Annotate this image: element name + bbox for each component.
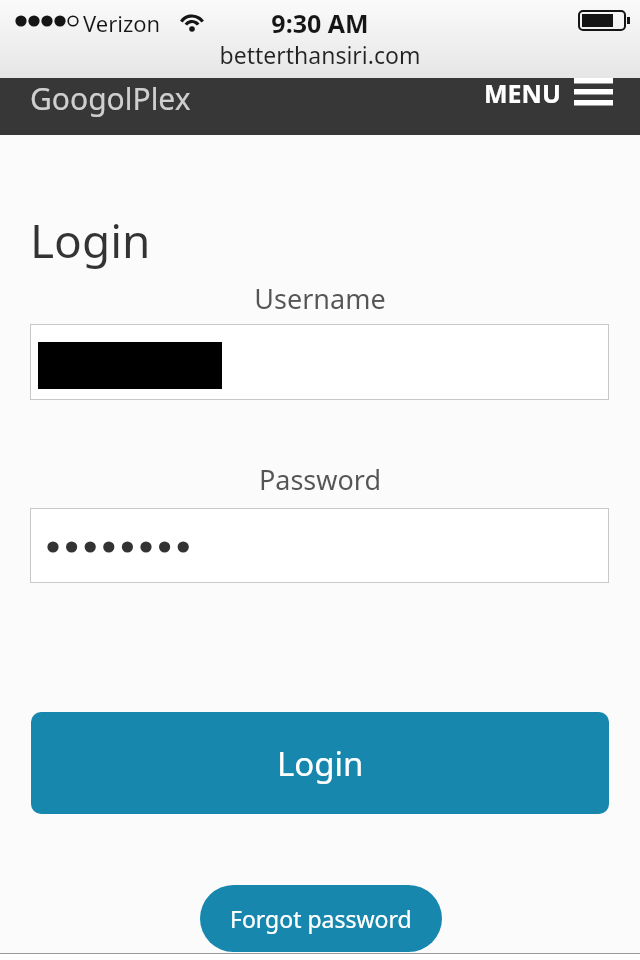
staticText: GoogolPlex <box>30 78 191 119</box>
staticText: Login <box>277 741 364 786</box>
button[interactable] <box>30 324 609 400</box>
staticText: 9:30 AM <box>0 6 640 40</box>
button[interactable] <box>30 508 609 583</box>
button[interactable]: MENU <box>480 76 620 110</box>
button[interactable]: Forgot password <box>200 885 442 952</box>
staticText: MENU <box>484 76 561 110</box>
staticText: Verizon <box>83 8 161 38</box>
staticText: Username <box>0 280 640 317</box>
staticText: Password <box>0 461 640 498</box>
staticText: betterthansiri.com <box>0 39 640 70</box>
staticText: Forgot password <box>230 903 412 934</box>
button[interactable]: Login <box>31 712 609 814</box>
staticText: Login <box>30 209 151 272</box>
